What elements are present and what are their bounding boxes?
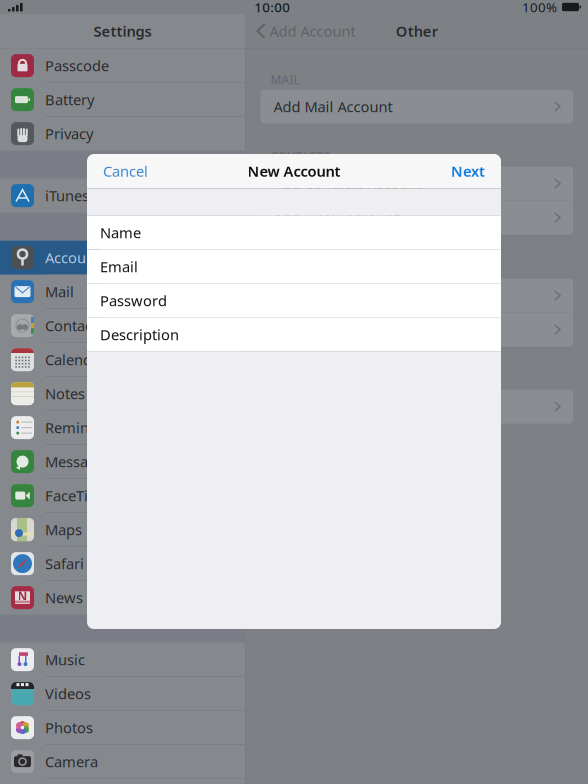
button[interactable]: Videos	[0, 677, 245, 711]
staticText: iTunes	[45, 186, 89, 205]
staticText: Add Mail Account	[274, 97, 393, 116]
staticText: 100%	[522, 0, 557, 16]
button[interactable]: N	[0, 581, 245, 615]
button[interactable]: Accounts	[0, 241, 245, 275]
button[interactable]: Add LDAP Account	[261, 201, 573, 235]
button[interactable]: Add CalDAV Account	[261, 313, 573, 347]
button[interactable]: Add Mail Account	[261, 90, 573, 124]
button[interactable]: Reminders	[0, 411, 245, 445]
staticText: Battery	[45, 90, 94, 109]
staticText: Add Account	[270, 21, 356, 41]
staticText: News	[45, 588, 83, 607]
staticText: Privacy	[45, 124, 93, 143]
button[interactable]: Description	[87, 318, 501, 352]
staticText: Videos	[45, 684, 91, 703]
button[interactable]: Email	[87, 250, 501, 284]
button[interactable]: Next	[435, 154, 501, 188]
staticText: Add LDAP Account	[274, 208, 400, 227]
staticText: Mail	[45, 282, 74, 301]
button[interactable]: Name	[87, 216, 501, 250]
staticText: Settings	[93, 21, 151, 41]
button[interactable]: Messages	[0, 445, 245, 479]
staticText: Maps	[45, 520, 82, 539]
staticText: CONTACTS	[271, 149, 331, 165]
button[interactable]: iTunes	[0, 179, 245, 213]
button[interactable]: Contacts	[0, 309, 245, 343]
staticText: Passcode	[45, 56, 109, 75]
staticText: Next	[451, 161, 485, 181]
button[interactable]: Add Contacts Account	[261, 167, 573, 201]
staticText: Calendar	[45, 350, 106, 369]
button[interactable]: Notes	[0, 377, 245, 411]
staticText: Messages	[45, 452, 112, 471]
button[interactable]: Add Subscribed Calendar	[261, 279, 573, 313]
staticText: Camera	[45, 752, 98, 771]
staticText: Accounts	[45, 248, 107, 267]
button[interactable]: Battery	[0, 83, 245, 117]
staticText: New Account	[247, 161, 340, 181]
staticText: Music	[45, 650, 85, 669]
button[interactable]: Password	[87, 284, 501, 318]
button[interactable]: FaceTime	[0, 479, 245, 513]
staticText: Other	[396, 21, 438, 41]
button[interactable]: Camera	[0, 745, 245, 779]
staticText: Reminders	[45, 418, 119, 437]
staticText: N	[17, 588, 27, 604]
button[interactable]: Music	[0, 643, 245, 677]
button[interactable]: Add Account	[246, 14, 356, 48]
button[interactable]: Passcode	[0, 49, 245, 83]
button[interactable]: Mail	[0, 275, 245, 309]
staticText: Contacts	[45, 316, 104, 335]
button[interactable]: Maps	[0, 513, 245, 547]
staticText: Safari	[45, 554, 84, 573]
button[interactable]: Cancel	[87, 154, 164, 188]
button[interactable]: Privacy	[0, 117, 245, 151]
staticText: MAIL	[271, 72, 300, 88]
button[interactable]: Calendar	[0, 343, 245, 377]
button[interactable]: Safari	[0, 547, 245, 581]
staticText: Notes	[45, 384, 85, 403]
staticText: Description	[100, 325, 179, 344]
staticText: Name	[100, 223, 141, 242]
button[interactable]: Add Server Account	[261, 390, 573, 424]
staticText: Add Contacts Account	[274, 174, 423, 193]
staticText: Photos	[45, 718, 93, 737]
staticText: Cancel	[103, 161, 148, 181]
staticText: Email	[100, 257, 138, 276]
staticText: Password	[100, 291, 167, 310]
staticText: FaceTime	[45, 486, 110, 505]
button[interactable]: Photos	[0, 711, 245, 745]
staticText: 10:00	[254, 0, 290, 16]
